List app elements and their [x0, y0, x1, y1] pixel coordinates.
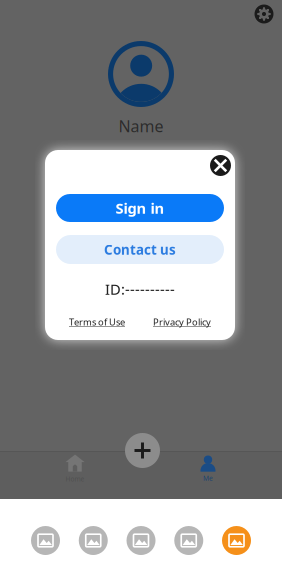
button[interactable]: Photo 4: [174, 526, 203, 555]
button[interactable]: Privacy Policy: [153, 316, 211, 328]
staticText: Contact us: [104, 241, 176, 258]
staticText: Terms of Use: [69, 316, 125, 328]
button[interactable]: Sign in: [56, 194, 224, 222]
button[interactable]: Settings: [249, 0, 279, 29]
staticText: Me: [203, 474, 213, 483]
button[interactable]: Home: [45, 452, 105, 486]
staticText: ID:----------: [105, 279, 175, 299]
button[interactable]: Me: [178, 452, 238, 486]
staticText: Home: [65, 475, 84, 483]
staticText: Name: [118, 115, 163, 137]
staticText: Privacy Policy: [153, 316, 211, 328]
staticText: Sign in: [115, 198, 164, 218]
button[interactable]: Contact us: [56, 235, 224, 264]
button[interactable]: Terms of Use: [69, 316, 125, 328]
button[interactable]: Photo 3: [126, 526, 155, 555]
button[interactable]: Photo 5: [222, 526, 251, 555]
button[interactable]: Close: [210, 155, 231, 176]
button[interactable]: Add: [125, 433, 160, 468]
button[interactable]: Photo 1: [31, 526, 60, 555]
button[interactable]: Photo 2: [79, 526, 108, 555]
